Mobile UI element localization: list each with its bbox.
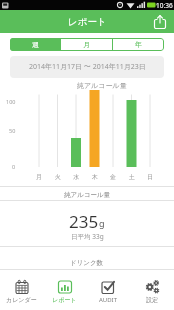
staticText: 火 [55,173,61,181]
staticText: カレンダー [6,296,37,304]
staticText: 木 [92,173,98,181]
staticText: ドリンク数 [70,259,104,267]
staticText: 50 [9,127,16,134]
staticText: レポート [68,16,107,28]
staticText: 水 [73,173,79,181]
staticText: 純アルコール量 [64,191,111,199]
button[interactable]: 設定 [130,270,174,310]
staticText: 日 [147,173,153,181]
staticText: レポート [52,296,77,304]
staticText: 日平均 33g [71,232,104,241]
staticText: 2014年11月17日 〜 2014年11月23日 [29,62,146,72]
button[interactable]: カレンダー [0,270,43,310]
staticText: 純アルコール量 [77,81,127,90]
button[interactable]: 週 [10,38,60,51]
staticText: 10:36 [156,1,173,10]
staticText: 月 [83,40,90,49]
button[interactable]: 年 [113,38,164,51]
button[interactable]: レポート [43,270,86,310]
staticText: 235 [69,210,99,233]
staticText: 週 [32,40,39,49]
staticText: 100 [6,98,16,105]
button[interactable]: AUDIT [86,270,130,310]
button[interactable] [151,13,168,30]
staticText: 0 [12,163,16,170]
staticText: 土 [129,173,135,181]
staticText: 月 [36,173,42,181]
staticText: AUDIT [99,296,117,304]
staticText: 金 [110,173,116,181]
staticText: 設定 [146,296,158,304]
staticText: 年 [135,40,142,49]
staticText: g [99,217,105,229]
button[interactable]: 月 [61,38,112,51]
